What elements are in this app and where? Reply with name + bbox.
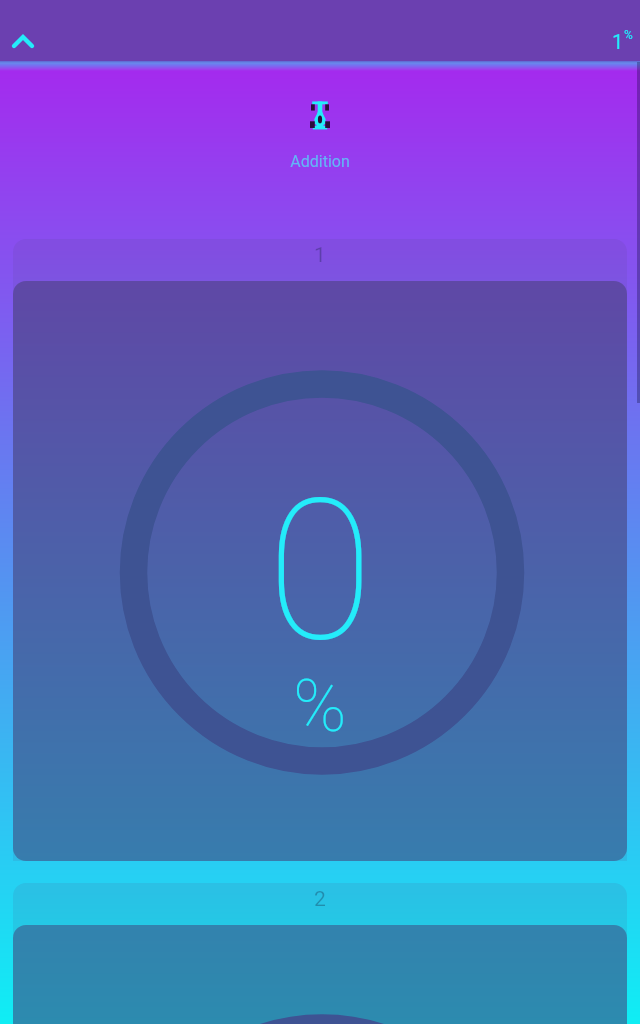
staticText: % xyxy=(624,28,633,42)
staticText: 1 xyxy=(314,243,326,268)
staticText: 2 xyxy=(314,887,326,912)
button[interactable]: 1 xyxy=(612,30,633,53)
staticText: % xyxy=(293,664,347,748)
staticText: Addition xyxy=(290,152,350,171)
button[interactable]: 2 xyxy=(13,883,627,1024)
staticText: 1 xyxy=(612,30,624,53)
button[interactable]: 1 xyxy=(13,239,627,861)
staticText: 0 xyxy=(267,458,374,685)
button[interactable]: Collapse xyxy=(0,17,46,63)
